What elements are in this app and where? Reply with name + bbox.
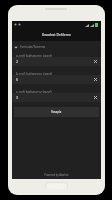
button[interactable]: Clear text bbox=[93, 77, 98, 82]
staticText: 6 bbox=[16, 77, 19, 82]
button[interactable]: Clear text bbox=[93, 59, 98, 64]
staticText: Hasapla bbox=[51, 110, 62, 114]
staticText: Powered by Alashev bbox=[12, 173, 101, 177]
button[interactable]: 6 bbox=[12, 75, 101, 84]
button[interactable]: Clear text bbox=[93, 95, 98, 100]
button[interactable]: 3 bbox=[12, 93, 101, 102]
button[interactable]: 2 bbox=[12, 57, 101, 66]
button[interactable]: Hasapla bbox=[14, 107, 99, 117]
button[interactable]: Formulas/Teorema bbox=[12, 42, 101, 52]
staticText: b-nyň bahasyny ýazyň bbox=[16, 71, 53, 76]
staticText: c-nyň bahasyny ýazyň bbox=[16, 89, 52, 94]
staticText: Formulas/Teorema bbox=[20, 45, 46, 49]
staticText: 3 bbox=[16, 95, 19, 100]
staticText: a-nyň bahasyny ýazyň bbox=[16, 53, 53, 58]
staticText: 2 bbox=[16, 59, 19, 64]
staticText: Kwadrat Deňleme bbox=[42, 32, 71, 37]
